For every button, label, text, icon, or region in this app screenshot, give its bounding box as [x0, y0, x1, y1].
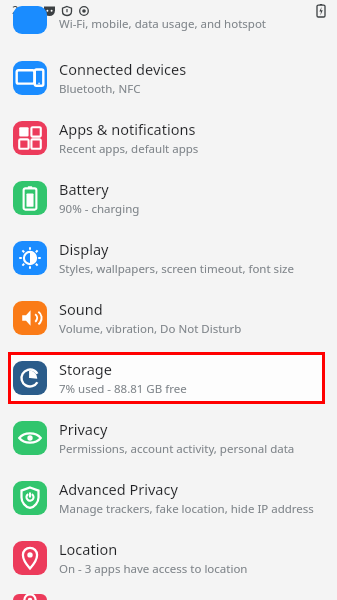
button[interactable]: Sound	[0, 288, 337, 348]
staticText: Wi-Fi, mobile, data usage, and hotspot	[59, 16, 266, 32]
button[interactable]: Wi-Fi, mobile, data usage, and hotspot	[0, 20, 337, 48]
button[interactable]: Location	[0, 528, 337, 588]
staticText: 7% used - 88.81 GB free	[59, 381, 187, 397]
staticText: Bluetooth, NFC	[59, 81, 141, 97]
button[interactable]: Advanced Privacy	[0, 468, 337, 528]
button[interactable]: Privacy	[0, 408, 337, 468]
staticText: Display	[59, 239, 109, 259]
button[interactable]: Connected devices	[0, 48, 337, 108]
staticText: 2:37	[12, 2, 35, 18]
button[interactable]: Battery	[0, 168, 337, 228]
staticText: 90% - charging	[59, 201, 140, 217]
staticText: Recent apps, default apps	[59, 141, 199, 157]
staticText: Sound	[59, 299, 103, 319]
staticText: Styles, wallpapers, screen timeout, font…	[59, 261, 294, 277]
staticText: Battery	[59, 179, 109, 199]
staticText: Apps & notifications	[59, 119, 196, 139]
staticText: Volume, vibration, Do Not Disturb	[59, 321, 242, 337]
button[interactable]: Storage	[8, 352, 325, 404]
button[interactable]: Apps & notifications	[0, 108, 337, 168]
staticText: Advanced Privacy	[59, 479, 178, 499]
staticText: Storage	[59, 359, 112, 379]
staticText: Manage trackers, fake location, hide IP …	[59, 501, 314, 517]
staticText: On - 3 apps have access to location	[59, 561, 248, 577]
staticText: Privacy	[59, 419, 108, 439]
button[interactable]: Display	[0, 228, 337, 288]
staticText: Connected devices	[59, 59, 187, 79]
staticText: Permissions, account activity, personal …	[59, 441, 295, 457]
button[interactable]: Security	[0, 588, 337, 600]
staticText: Location	[59, 539, 118, 559]
